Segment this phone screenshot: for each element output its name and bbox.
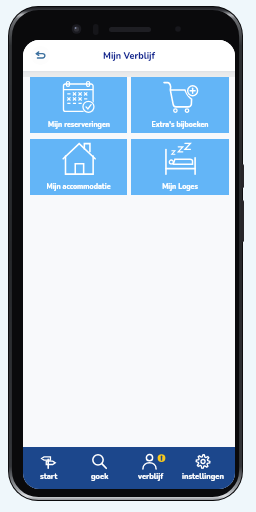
staticText: Mijn Verblijf [103, 50, 156, 62]
button[interactable]: Terug [31, 46, 50, 65]
staticText: goek [91, 471, 109, 481]
staticText: Mijn Loges [162, 182, 198, 192]
staticText: Mijn reserveringen [48, 120, 110, 130]
staticText: instellingen [182, 471, 224, 481]
button[interactable]: Mijn accommodatie [30, 139, 127, 195]
staticText: Extra's bijboeken [151, 120, 209, 130]
staticText: start [40, 471, 58, 481]
staticText: Mijn accommodatie [46, 182, 111, 192]
button[interactable]: Mijn reserveringen [30, 77, 127, 133]
button[interactable]: goek [74, 447, 125, 489]
button[interactable]: verblijf [125, 447, 177, 489]
button[interactable]: start [23, 447, 74, 489]
staticText: verblijf [138, 471, 164, 481]
button[interactable]: instellingen [177, 447, 229, 489]
button[interactable]: Extra's bijboeken [131, 77, 229, 133]
button[interactable]: Mijn Loges [131, 139, 229, 195]
